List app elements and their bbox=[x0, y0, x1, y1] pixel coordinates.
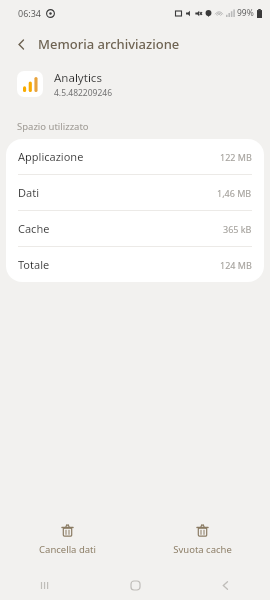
button[interactable]: Recents bbox=[0, 570, 90, 600]
staticText: 99% bbox=[237, 7, 254, 19]
staticText: Cancella dati bbox=[39, 543, 96, 556]
staticText: Analytics bbox=[54, 70, 102, 86]
staticText: Spazio utilizzato bbox=[17, 120, 89, 133]
staticText: Totale bbox=[18, 257, 50, 272]
staticText: 122 MB bbox=[220, 151, 252, 163]
button[interactable]: Applicazione bbox=[6, 139, 264, 174]
staticText: Dati bbox=[18, 185, 40, 200]
button[interactable]: Dati bbox=[6, 175, 264, 210]
staticText: 06:34 bbox=[18, 7, 42, 19]
button[interactable]: Analytics bbox=[0, 62, 270, 106]
staticText: Svuota cache bbox=[173, 543, 232, 556]
button[interactable]: Back bbox=[8, 31, 34, 57]
button[interactable]: Totale bbox=[6, 247, 264, 282]
staticText: Applicazione bbox=[18, 149, 84, 164]
button[interactable]: Cancella dati bbox=[0, 517, 135, 562]
staticText: 124 MB bbox=[220, 259, 252, 271]
button[interactable]: Back bbox=[180, 570, 270, 600]
staticText: Cache bbox=[18, 221, 50, 236]
staticText: Memoria archiviazione bbox=[38, 35, 180, 53]
staticText: 4.5.482209246 bbox=[54, 87, 113, 99]
button[interactable]: Home bbox=[90, 570, 180, 600]
button[interactable]: Cache bbox=[6, 211, 264, 246]
button[interactable]: Svuota cache bbox=[135, 517, 270, 562]
staticText: 1,46 MB bbox=[217, 187, 252, 199]
staticText: 365 kB bbox=[223, 223, 252, 235]
